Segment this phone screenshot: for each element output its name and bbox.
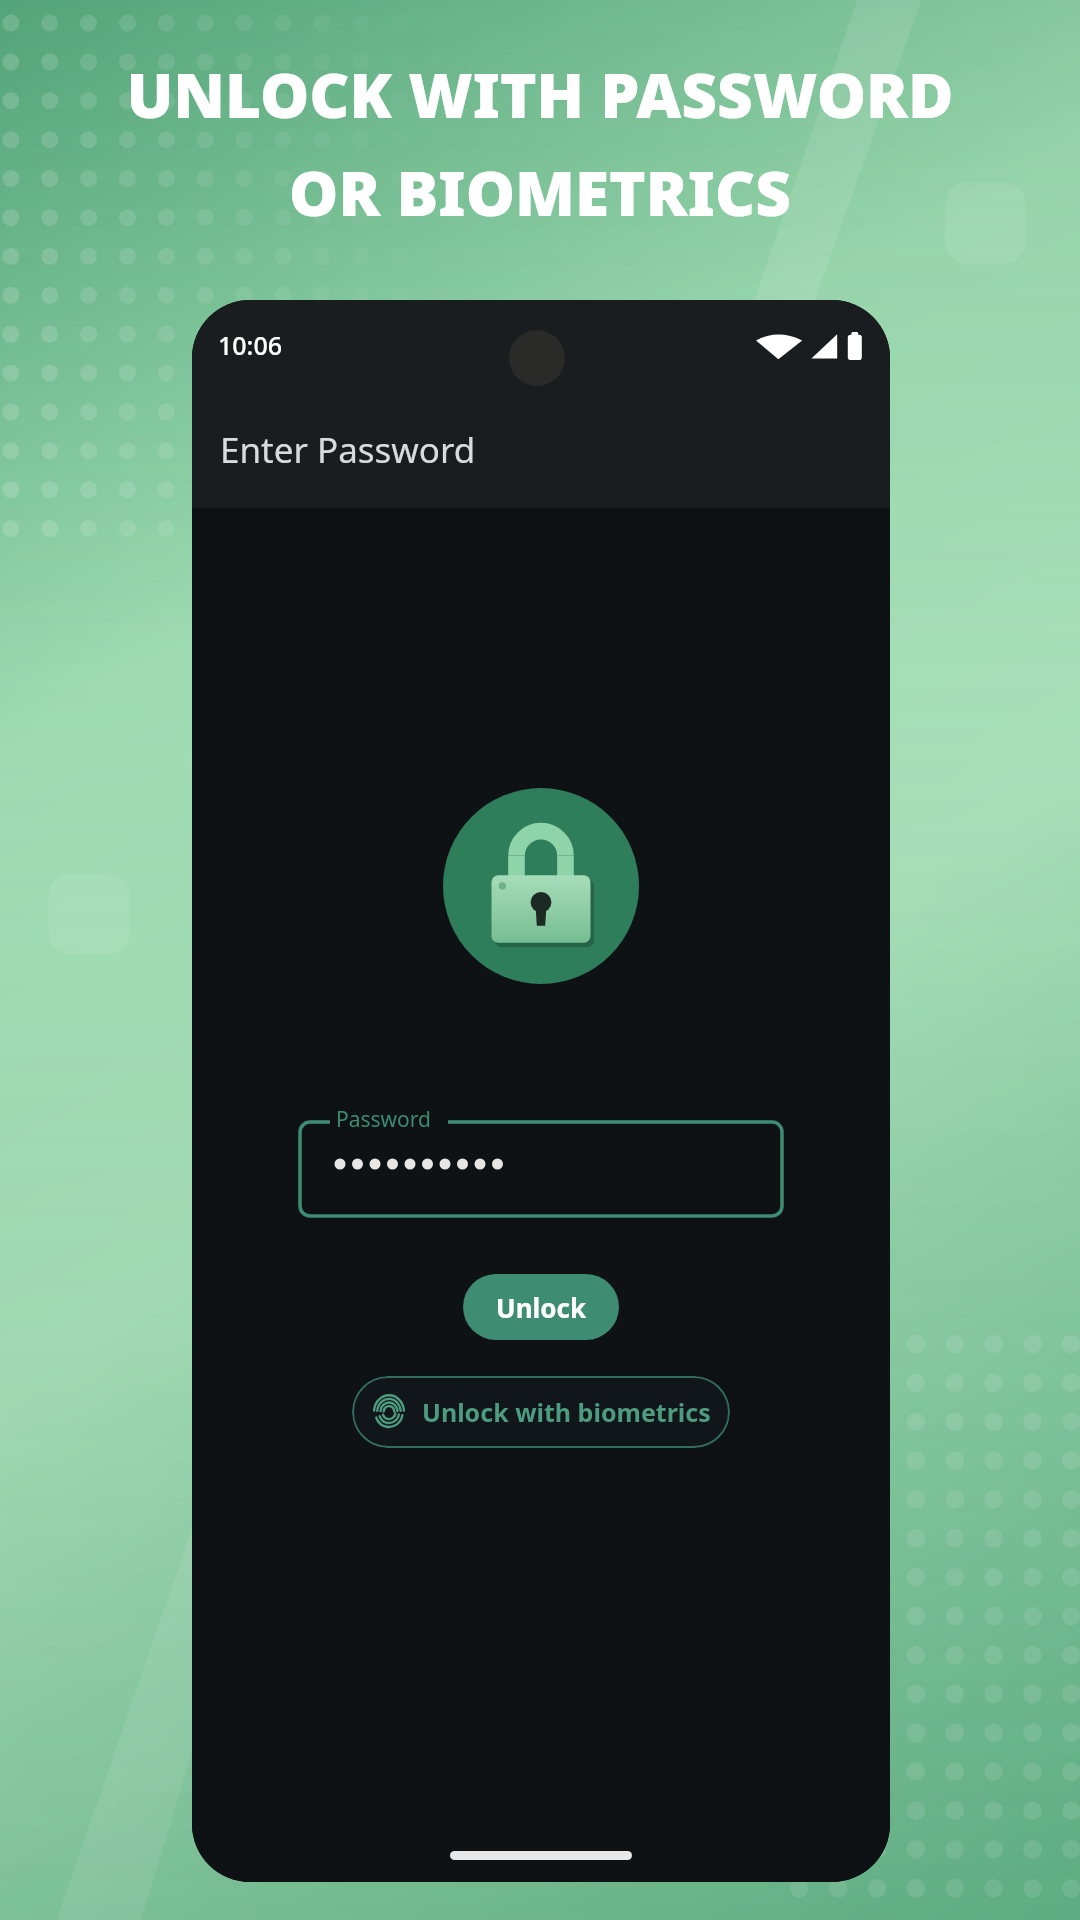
staticText: Enter Password (220, 426, 476, 474)
staticText: Unlock with biometrics (422, 1395, 711, 1429)
staticText: 10:06 (218, 328, 283, 362)
button[interactable]: Unlock (463, 1274, 619, 1340)
button[interactable]: Fingerprint (352, 1376, 730, 1448)
other: Fingerprint (372, 1395, 406, 1429)
staticText: Password (336, 1105, 431, 1134)
staticText: OR BIOMETRICS (289, 150, 791, 234)
staticText: UNLOCK WITH PASSWORD (126, 52, 954, 136)
staticText: Unlock (496, 1290, 587, 1325)
button[interactable]: Password (300, 1112, 782, 1216)
